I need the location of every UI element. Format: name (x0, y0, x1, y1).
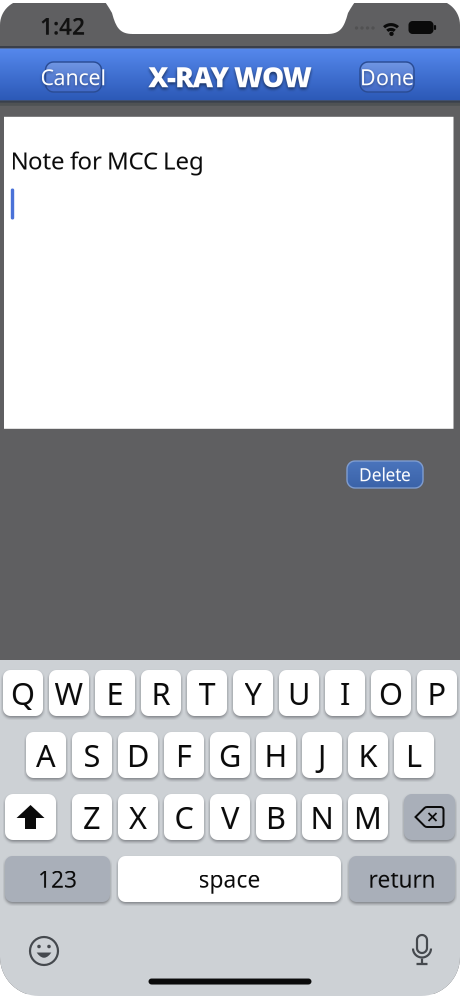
staticText: V (221, 797, 239, 837)
button[interactable]: Delete (346, 460, 424, 489)
button[interactable]: Y (233, 669, 273, 717)
button[interactable]: return (349, 855, 455, 903)
staticText: C (174, 797, 193, 837)
button[interactable]: V (210, 793, 250, 841)
staticText: W (54, 673, 83, 713)
button[interactable]: Shift (5, 793, 56, 841)
staticText: Y (244, 673, 261, 713)
button[interactable]: K (348, 731, 388, 779)
staticText: D (127, 735, 149, 775)
button[interactable]: F (164, 731, 204, 779)
button[interactable]: Q (3, 669, 43, 717)
staticText: F (176, 735, 192, 775)
staticText: Note for MCC Leg (10, 144, 204, 176)
button[interactable]: D (118, 731, 158, 779)
staticText: Cancel (40, 63, 106, 91)
staticText: X-RAY WOW (148, 58, 312, 95)
button[interactable]: Delete (404, 793, 455, 841)
staticText: L (406, 735, 422, 775)
button[interactable]: A (26, 731, 66, 779)
staticText: H (264, 735, 287, 775)
staticText: J (318, 735, 326, 775)
button[interactable]: X (118, 793, 158, 841)
staticText: P (427, 673, 446, 713)
button[interactable]: W (49, 669, 89, 717)
button[interactable]: Z (72, 793, 112, 841)
button[interactable]: R (141, 669, 181, 717)
staticText: N (310, 797, 333, 837)
staticText: A (36, 735, 56, 775)
button[interactable]: L (394, 731, 434, 779)
button[interactable]: H (256, 731, 296, 779)
staticText: U (288, 673, 310, 713)
staticText: S (83, 735, 100, 775)
staticText: M (354, 797, 382, 837)
button[interactable]: 123 (5, 855, 110, 903)
button[interactable]: J (302, 731, 342, 779)
button[interactable]: Cancel (43, 60, 103, 94)
button[interactable]: I (325, 669, 365, 717)
button[interactable]: N (302, 793, 342, 841)
staticText: Z (83, 797, 101, 837)
staticText: G (219, 735, 241, 775)
button[interactable]: E (95, 669, 135, 717)
staticText: Delete (359, 463, 411, 486)
staticText: T (198, 673, 215, 713)
staticText: K (358, 735, 377, 775)
button[interactable]: Dictate (408, 935, 436, 967)
staticText: Q (11, 673, 35, 713)
staticText: O (379, 673, 403, 713)
staticText: space (198, 864, 260, 894)
button[interactable]: G (210, 731, 250, 779)
staticText: 1:42 (40, 11, 85, 41)
staticText: return (368, 864, 435, 894)
staticText: X (129, 797, 147, 837)
button[interactable]: M (348, 793, 388, 841)
button[interactable]: Done (358, 60, 416, 94)
staticText: I (340, 673, 350, 713)
button[interactable]: space (118, 855, 341, 903)
button[interactable]: O (371, 669, 411, 717)
button[interactable]: C (164, 793, 204, 841)
staticText: Done (360, 63, 414, 91)
staticText: E (106, 673, 123, 713)
button[interactable]: S (72, 731, 112, 779)
staticText: R (151, 673, 170, 713)
button[interactable]: U (279, 669, 319, 717)
button[interactable]: P (417, 669, 457, 717)
button[interactable]: B (256, 793, 296, 841)
staticText: 123 (38, 864, 77, 894)
staticText: B (266, 797, 286, 837)
button[interactable]: T (187, 669, 227, 717)
button[interactable]: Emoji (28, 935, 60, 967)
